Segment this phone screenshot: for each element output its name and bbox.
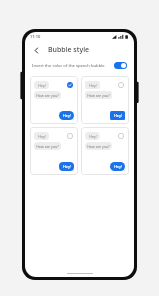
staticText: How are you? [36,144,59,149]
staticText: Bubble style [48,45,90,55]
button[interactable]: Hey! [81,127,129,175]
button[interactable]: Select bubble style [65,131,74,140]
button[interactable]: Hey! [30,127,78,175]
staticText: Hey! [114,164,122,169]
button[interactable]: Select bubble style [116,131,125,140]
staticText: Invert the color of the speech bubble [32,63,110,69]
button[interactable]: Hey! [81,76,129,124]
button[interactable]: Invert the color of the speech bubble [25,58,134,73]
staticText: Hey! [38,134,46,139]
button[interactable]: Selected bubble style [65,80,74,89]
staticText: Hey! [63,113,71,118]
staticText: How are you? [36,93,59,98]
staticText: 11:10 [30,34,41,39]
staticText: How are you? [87,144,110,149]
staticText: How are you? [87,93,110,98]
staticText: Hey! [114,113,122,118]
button[interactable]: Hey! [30,76,78,124]
button[interactable]: Select bubble style [116,80,125,89]
button[interactable]: Back [29,43,43,57]
staticText: Hey! [89,83,97,88]
staticText: Hey! [89,134,97,139]
staticText: Hey! [38,83,46,88]
button[interactable]: Invert bubble color [114,62,127,69]
staticText: Hey! [63,164,71,169]
